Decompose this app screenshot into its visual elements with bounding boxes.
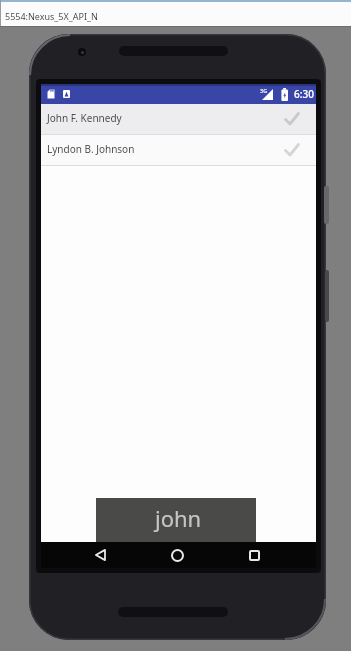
staticText: john [155, 503, 202, 533]
button[interactable]: john [96, 498, 256, 543]
button[interactable]: John F. Kennedy [41, 104, 316, 134]
staticText: John F. Kennedy [47, 111, 122, 125]
button[interactable] [157, 542, 197, 568]
button[interactable] [234, 542, 274, 568]
staticText: 3G [260, 87, 268, 94]
button[interactable] [80, 542, 120, 568]
button[interactable]: Lyndon B. Johnson [41, 135, 316, 165]
staticText: Lyndon B. Johnson [47, 142, 135, 156]
staticText: 6:30 [294, 87, 314, 101]
staticText: 5554:Nexus_5X_API_N [5, 10, 98, 22]
